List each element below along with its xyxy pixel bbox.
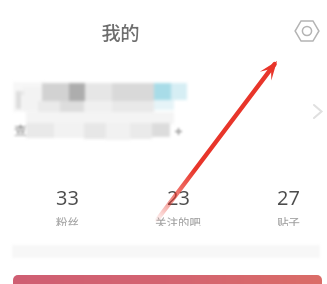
button[interactable]: 27 (238, 184, 327, 226)
staticText: 33 (56, 184, 79, 211)
button[interactable]: 33 (17, 184, 117, 226)
staticText: 查 (14, 122, 27, 138)
button[interactable]: Profile (0, 72, 210, 154)
button[interactable]: Profile details (303, 96, 327, 126)
button[interactable]: Settings (287, 11, 327, 51)
staticText: 23 (167, 184, 190, 211)
staticText: 粉丝 (56, 214, 79, 226)
staticText: 关注的吧 (155, 214, 201, 226)
staticText: 27 (277, 184, 300, 211)
button[interactable] (13, 275, 322, 284)
staticText: 我的 (101, 18, 140, 44)
staticText: 贴子 (277, 214, 300, 226)
button[interactable]: 23 (128, 184, 228, 226)
